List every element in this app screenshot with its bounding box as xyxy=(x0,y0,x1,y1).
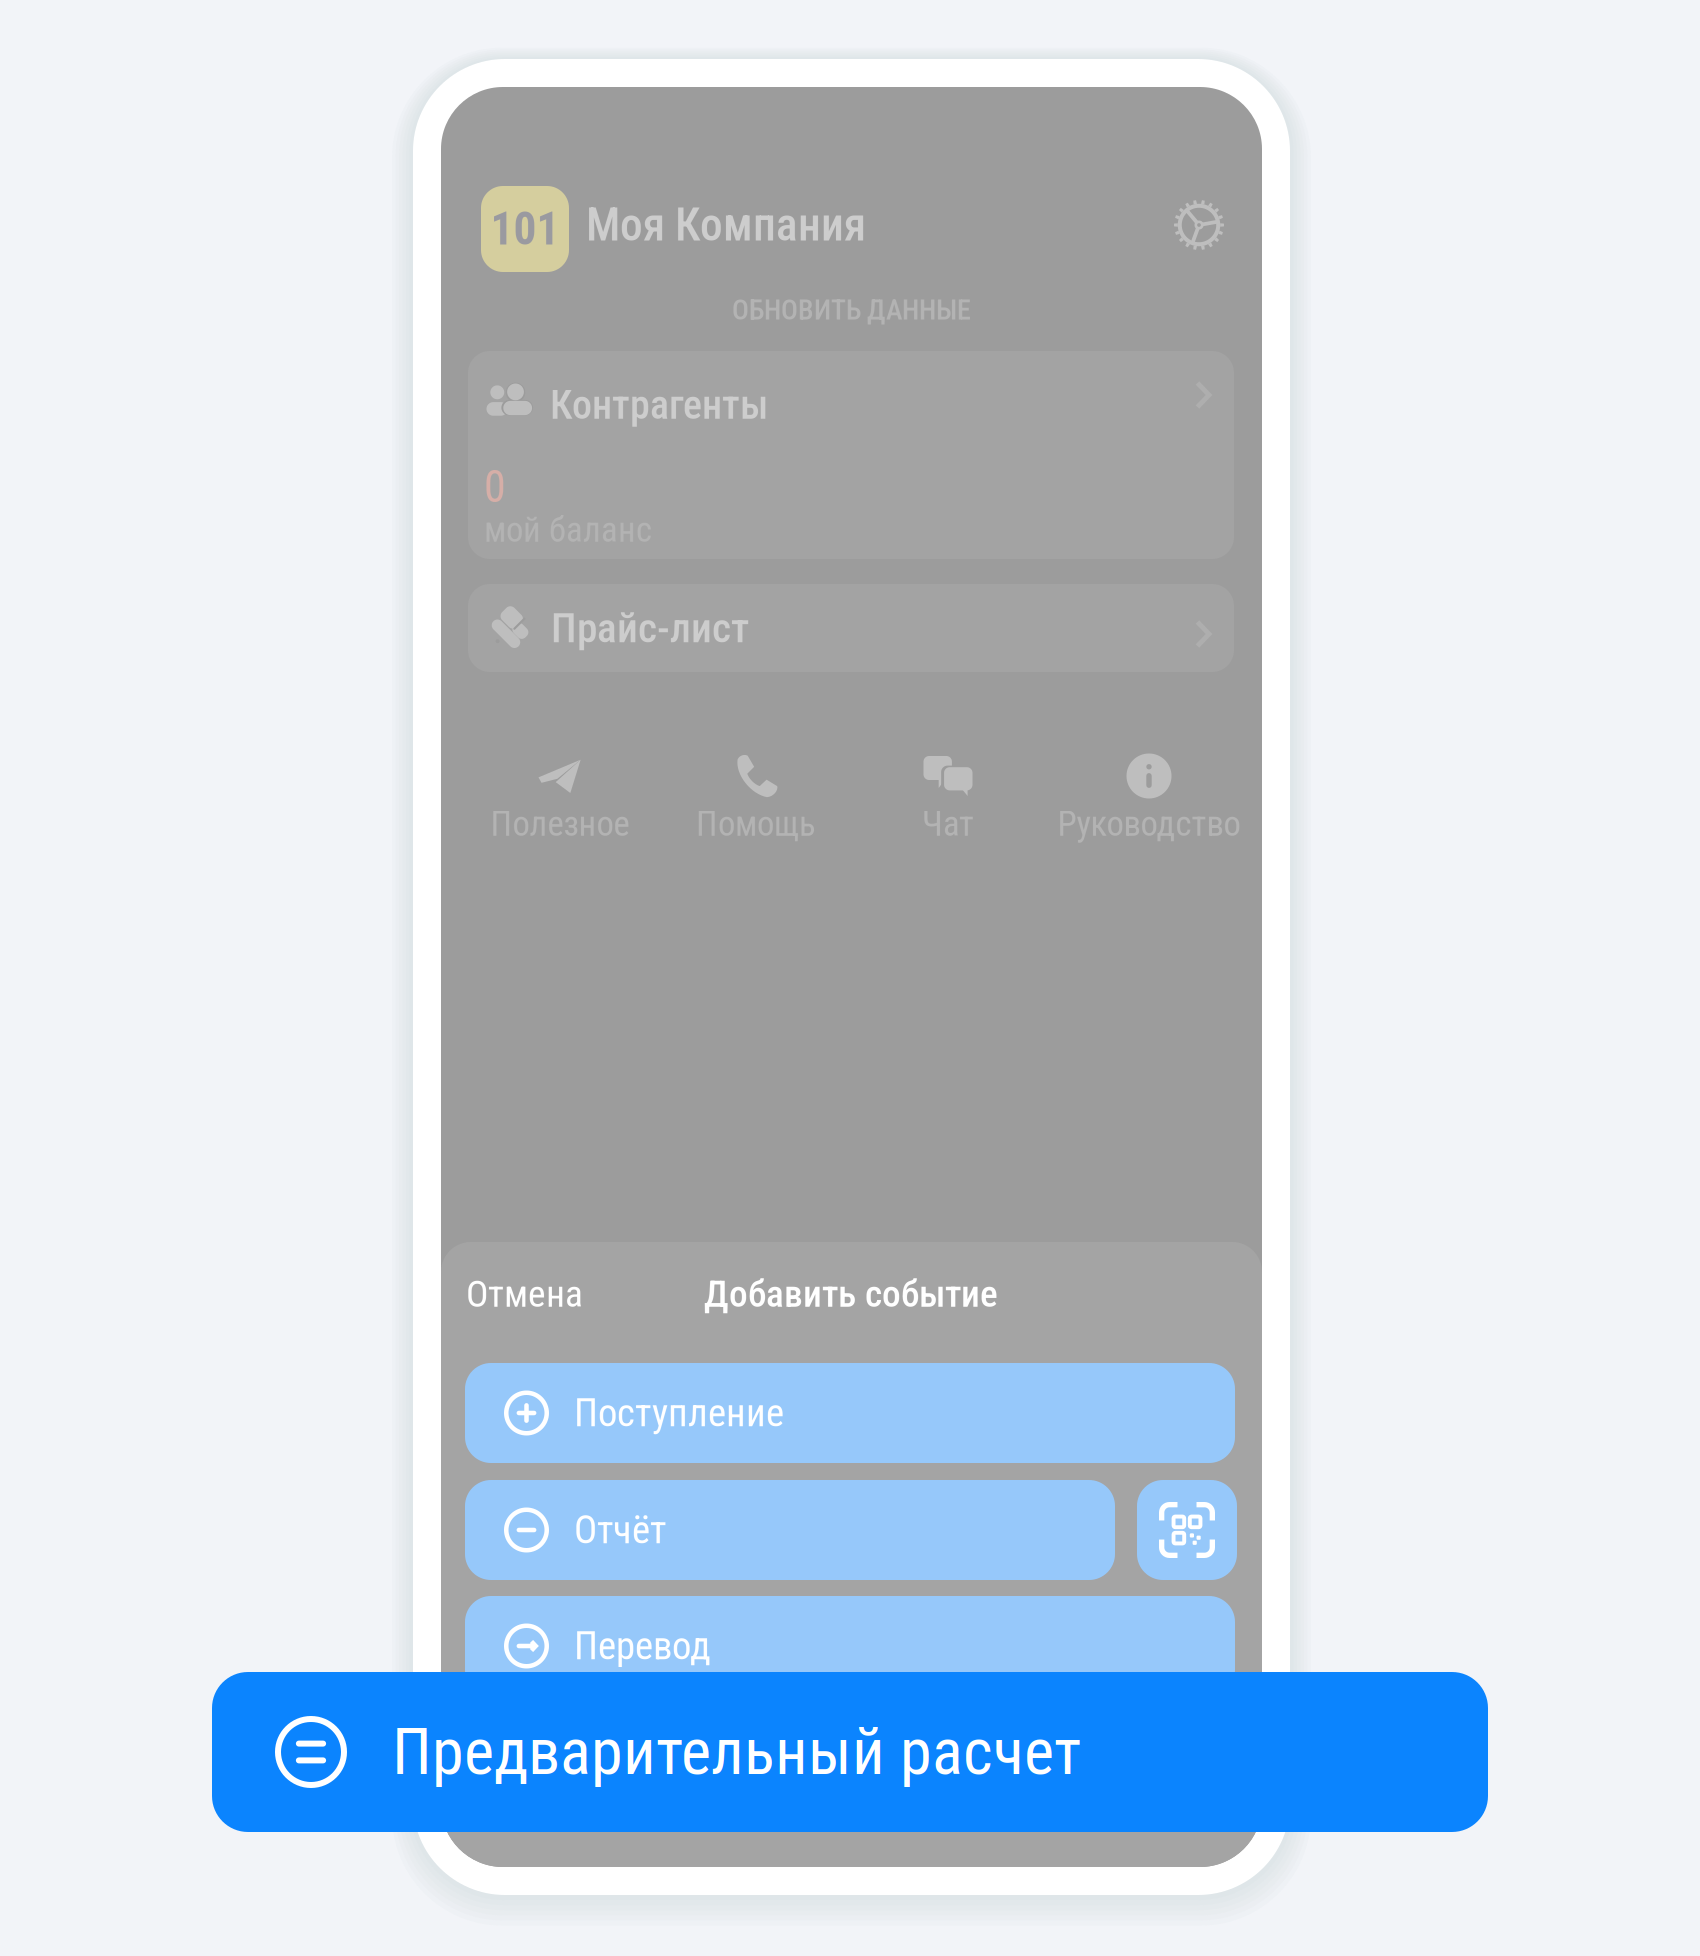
staticText: 101 xyxy=(490,202,559,255)
button[interactable]: Сканировать QR-код xyxy=(441,1242,541,1342)
staticText: Перевод xyxy=(574,1623,711,1669)
staticText: мой баланс xyxy=(484,510,652,550)
button[interactable]: Перевод xyxy=(441,1242,1211,1342)
staticText: Добавить событие xyxy=(704,1272,998,1316)
staticText: Руководство xyxy=(1057,804,1240,844)
button[interactable]: Руководство xyxy=(1044,749,1254,845)
button[interactable]: Предварительный расчет xyxy=(0,0,1276,160)
button[interactable]: Чат xyxy=(843,749,1053,845)
button[interactable]: Поступление xyxy=(441,1242,1211,1342)
button[interactable]: Отчёт xyxy=(441,1242,1091,1342)
button[interactable]: Контрагенты xyxy=(441,87,1207,179)
button[interactable]: Отмена xyxy=(441,1242,641,1302)
staticText: Прайс-лист xyxy=(551,604,749,652)
button[interactable]: Помощь xyxy=(651,749,861,845)
button[interactable]: Настройки xyxy=(441,87,513,159)
button[interactable]: ОБНОВИТЬ ДАННЫЕ xyxy=(441,87,1262,133)
staticText: Помощь xyxy=(696,804,816,844)
button[interactable]: Полезное xyxy=(455,749,665,845)
staticText: 0 xyxy=(484,461,506,513)
staticText: Отмена xyxy=(466,1272,583,1316)
staticText: Полезное xyxy=(490,804,629,844)
staticText: Поступление xyxy=(574,1390,784,1436)
staticText: Контрагенты xyxy=(550,382,768,428)
staticText: Предварительный расчет xyxy=(392,1714,1081,1789)
staticText: ОБНОВИТЬ ДАННЫЕ xyxy=(732,294,971,326)
staticText: Чат xyxy=(922,804,974,844)
staticText: Отчёт xyxy=(574,1507,666,1553)
button[interactable]: Прайс-лист xyxy=(441,87,1207,175)
staticText: Моя Компания xyxy=(586,198,866,251)
